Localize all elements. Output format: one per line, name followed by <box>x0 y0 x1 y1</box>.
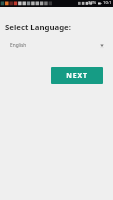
button[interactable]: NEXT <box>51 67 103 84</box>
staticText: NEXT <box>66 71 88 80</box>
staticText: Select Language: <box>5 22 71 33</box>
staticText: 32% <box>88 0 97 6</box>
staticText: English <box>10 42 27 49</box>
button[interactable]: English <box>0 39 113 51</box>
staticText: 10:1 <box>103 0 112 6</box>
